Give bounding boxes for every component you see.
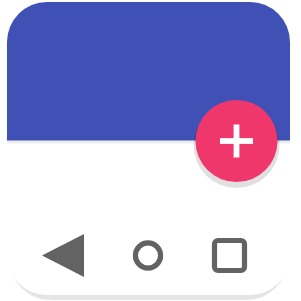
button[interactable]: Home — [126, 234, 170, 278]
button[interactable]: Back — [43, 234, 87, 278]
button[interactable]: Recents — [208, 234, 252, 278]
button[interactable]: Add — [196, 100, 278, 182]
